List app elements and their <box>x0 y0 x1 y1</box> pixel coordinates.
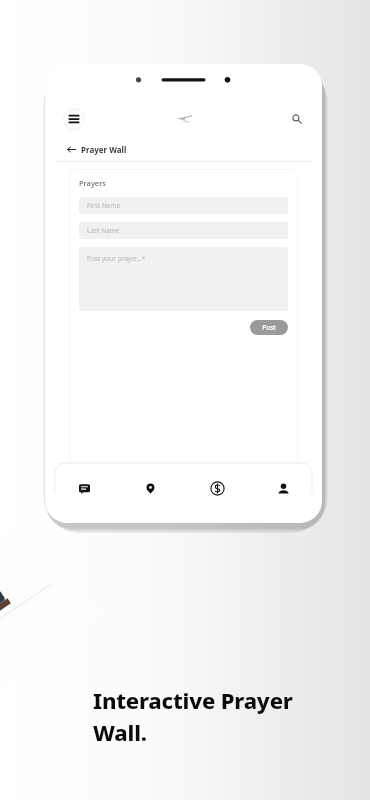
staticText: Post your prayer...* <box>87 254 146 263</box>
button[interactable]: Menu <box>63 108 85 130</box>
button[interactable]: Post your prayer...* <box>79 247 288 311</box>
button[interactable]: Search <box>288 110 306 128</box>
staticText: Wall. <box>93 717 147 747</box>
button[interactable]: First Name <box>79 197 288 214</box>
button[interactable]: Messages <box>71 475 97 501</box>
staticText: Interactive Prayer <box>93 685 293 715</box>
button[interactable]: Last Name <box>79 222 288 239</box>
staticText: Prayer Wall <box>81 144 127 155</box>
staticText: Post <box>262 323 276 332</box>
staticText: Last Name <box>87 226 120 235</box>
button[interactable]: Give <box>204 475 230 501</box>
button[interactable]: Profile <box>270 475 296 501</box>
staticText: First Name <box>87 201 121 210</box>
button[interactable]: Locations <box>137 475 163 501</box>
button[interactable]: Post <box>250 320 288 335</box>
staticText: Prayers <box>79 178 106 188</box>
button[interactable]: Prayer Wall <box>45 138 322 161</box>
